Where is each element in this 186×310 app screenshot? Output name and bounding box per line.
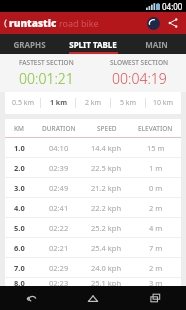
staticText: 15 m [147, 143, 165, 153]
staticText: 2.0 [14, 163, 25, 173]
staticText: 00:01:21 [19, 69, 74, 88]
button[interactable]: 0.5 km [5, 92, 41, 114]
staticText: 04:10 [49, 143, 69, 153]
staticText: 5.0 [14, 223, 25, 233]
button[interactable]: 6.0 [5, 238, 181, 257]
staticText: SPLIT TABLE [69, 39, 117, 50]
staticText: 4 m [149, 223, 163, 233]
staticText: FASTEST SECTION [19, 58, 74, 67]
staticText: 2 km [85, 98, 102, 108]
staticText: 02:41 [49, 203, 69, 213]
button[interactable]: 5 km [111, 92, 146, 114]
staticText: 02:39 [49, 163, 69, 173]
button[interactable]: SPLIT TABLE [59, 34, 127, 54]
staticText: 10 km [153, 98, 174, 108]
staticText: 22.5 kph [91, 163, 122, 173]
staticText: 4.0 [14, 203, 25, 213]
staticText: 0.5 km [12, 98, 34, 108]
staticText: 24.0 kph [91, 263, 122, 273]
staticText: 0 m [149, 183, 163, 193]
button[interactable]: GRAPHS [0, 34, 59, 54]
button[interactable]: SLOWEST SECTION [93, 54, 186, 92]
staticText: 04:00 [162, 1, 183, 12]
staticText: 00:04:19 [112, 69, 167, 88]
button[interactable]: Activity badge [143, 13, 163, 33]
staticText: 7.0 [14, 263, 25, 273]
staticText: 22.2 kph [91, 203, 122, 213]
staticText: SPEED [97, 124, 117, 133]
staticText: 21.2 kph [91, 183, 122, 193]
staticText: 3 m [149, 278, 163, 286]
staticText: 8.0 [14, 278, 25, 286]
button[interactable]: Back [0, 286, 62, 310]
button[interactable]: runtastic [3, 16, 100, 30]
button[interactable]: 3.0 [5, 178, 181, 197]
staticText: 6.0 [14, 243, 25, 253]
staticText: 1.0 [14, 143, 25, 153]
button[interactable]: 1 km [41, 92, 76, 114]
staticText: KM [14, 124, 25, 133]
staticText: 02:21 [49, 243, 69, 253]
staticText: 25.1 kph [91, 278, 122, 286]
button[interactable]: 5.0 [5, 218, 181, 237]
button[interactable]: 10 km [146, 92, 181, 114]
staticText: 1 km [50, 98, 67, 108]
staticText: 2 m [149, 203, 163, 213]
staticText: 5 km [120, 98, 137, 108]
button[interactable]: Recent apps [124, 286, 186, 310]
staticText: 02:29 [49, 263, 69, 273]
staticText: road bike [59, 17, 99, 29]
button[interactable]: 2.0 [5, 158, 181, 177]
staticText: 25.4 kph [91, 243, 122, 253]
staticText: SLOWEST SECTION [110, 58, 169, 67]
staticText: MAIN [145, 39, 168, 50]
button[interactable]: FASTEST SECTION [0, 54, 93, 92]
button[interactable]: 8.0 [5, 278, 181, 286]
staticText: 7 m [149, 243, 163, 253]
staticText: runtastic [9, 16, 57, 30]
button[interactable]: 1.0 [5, 138, 181, 157]
button[interactable]: MAIN [127, 34, 186, 54]
staticText: 1 m [149, 163, 163, 173]
staticText: 02:22 [49, 223, 69, 233]
staticText: 3.0 [14, 183, 25, 193]
button[interactable]: 4.0 [5, 198, 181, 217]
button[interactable]: Home [62, 286, 124, 310]
staticText: 25.2 kph [91, 223, 122, 233]
staticText: 02:49 [49, 183, 69, 193]
staticText: 02:23 [49, 278, 69, 286]
staticText: 2 m [149, 263, 163, 273]
staticText: DURATION [42, 124, 76, 133]
staticText: 14.4 kph [91, 143, 122, 153]
staticText: ELEVATION [138, 124, 173, 133]
button[interactable]: 7.0 [5, 258, 181, 277]
button[interactable]: 2 km [76, 92, 111, 114]
button[interactable]: Share [163, 13, 183, 33]
staticText: GRAPHS [13, 39, 46, 50]
